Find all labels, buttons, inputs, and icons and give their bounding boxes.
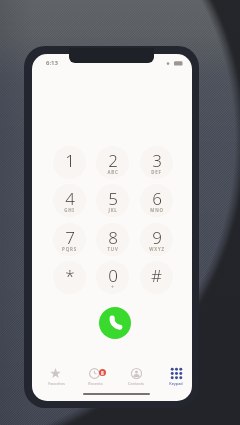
staticText: +	[111, 284, 115, 290]
staticText: 6	[152, 187, 162, 210]
button[interactable]: 3	[140, 146, 173, 179]
button[interactable]: #	[140, 261, 173, 294]
staticText: 5	[108, 187, 118, 210]
staticText: MNO	[150, 207, 164, 213]
staticText: 2	[108, 149, 118, 172]
button[interactable]: 7	[53, 223, 86, 256]
button[interactable]	[37, 363, 75, 387]
button[interactable]: 9	[140, 223, 173, 256]
staticText: 1	[65, 149, 75, 172]
button[interactable]	[76, 363, 114, 387]
button[interactable]: 6	[140, 184, 173, 217]
staticText: 0	[108, 264, 118, 287]
staticText: 3	[152, 149, 162, 172]
staticText: TUV	[107, 246, 119, 252]
staticText: #	[151, 264, 162, 287]
staticText: Contacts	[128, 381, 144, 386]
staticText: *	[65, 264, 75, 287]
staticText: 9	[152, 226, 162, 249]
button[interactable]: *	[53, 261, 86, 294]
staticText: 6:13	[46, 59, 58, 67]
staticText: Keypad	[169, 381, 183, 386]
staticText: 7	[65, 226, 75, 249]
button[interactable]	[117, 363, 155, 387]
button[interactable]: 4	[53, 184, 86, 217]
button[interactable]: 0	[96, 261, 129, 294]
button[interactable]: Call	[99, 307, 131, 339]
staticText: WXYZ	[149, 246, 165, 252]
button[interactable]: 1	[53, 146, 86, 179]
button[interactable]: 2	[96, 146, 129, 179]
staticText: GHI	[64, 207, 75, 213]
staticText: ABC	[107, 169, 119, 175]
button[interactable]: 5	[96, 184, 129, 217]
staticText: 8	[101, 370, 104, 376]
button[interactable]: 8	[96, 223, 129, 256]
staticText: 4	[65, 187, 75, 210]
staticText: DEF	[151, 169, 162, 175]
staticText: Recents	[88, 381, 103, 386]
staticText: 8	[108, 226, 118, 249]
staticText: JKL	[108, 207, 118, 213]
button[interactable]	[157, 363, 192, 387]
staticText: PQRS	[62, 246, 77, 252]
staticText: Favorites	[48, 381, 65, 386]
